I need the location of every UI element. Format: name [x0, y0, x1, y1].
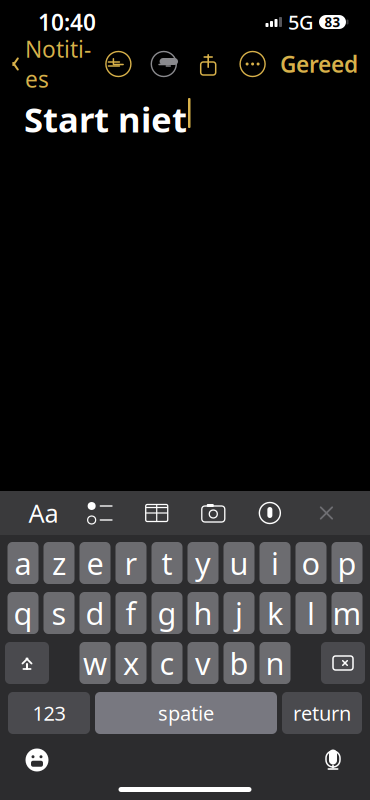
button[interactable]: k [259, 592, 290, 634]
staticText: n [265, 643, 284, 683]
button[interactable]: a [7, 542, 38, 584]
button[interactable]: spatie [95, 692, 277, 734]
staticText: q [13, 593, 32, 633]
staticText: s [51, 593, 66, 633]
button[interactable]: Shift [5, 642, 49, 684]
button[interactable]: m [331, 592, 362, 634]
button[interactable]: o [295, 542, 326, 584]
button[interactable]: Table [140, 498, 174, 528]
button[interactable]: q [7, 592, 38, 634]
staticText: return [293, 700, 351, 726]
staticText: r [124, 543, 137, 583]
staticText: 83 [324, 13, 340, 31]
button[interactable]: c [151, 642, 182, 684]
staticText: c [159, 643, 174, 683]
staticText: Aa [29, 496, 59, 530]
staticText: d [85, 593, 104, 633]
staticText: z [52, 543, 66, 583]
button[interactable]: v [187, 642, 218, 684]
button[interactable]: u [223, 542, 254, 584]
button[interactable]: d [79, 592, 110, 634]
staticText: spatie [158, 700, 214, 726]
staticText: y [195, 543, 211, 583]
staticText: w [83, 643, 107, 683]
button[interactable]: Emoji [0, 745, 52, 775]
staticText: e [86, 543, 103, 583]
button[interactable]: Gereed [280, 43, 370, 85]
button[interactable]: p [331, 542, 362, 584]
button[interactable]: Redo [146, 46, 182, 82]
button[interactable]: Notities [0, 28, 91, 100]
button[interactable]: Text format [27, 498, 61, 528]
staticText: Gereed [280, 49, 358, 79]
staticText: 10:40 [38, 7, 96, 37]
staticText: m [332, 593, 361, 633]
staticText: b [229, 643, 248, 683]
button[interactable]: Undo [100, 46, 136, 82]
staticText: l [307, 593, 315, 633]
button[interactable]: z [43, 542, 74, 584]
staticText: j [235, 593, 243, 633]
button[interactable]: Hide keyboard [309, 498, 343, 528]
button[interactable]: Checklist [83, 498, 117, 528]
button[interactable]: t [151, 542, 182, 584]
staticText: f [125, 593, 136, 633]
button[interactable]: Dictate [320, 745, 370, 775]
staticText: k [267, 593, 283, 633]
staticText: t [161, 543, 172, 583]
button[interactable]: e [79, 542, 110, 584]
button[interactable]: x [115, 642, 146, 684]
button[interactable]: b [223, 642, 254, 684]
button[interactable]: Camera [196, 498, 230, 528]
staticText: v [195, 643, 211, 683]
staticText: o [301, 543, 320, 583]
staticText: p [337, 543, 356, 583]
button[interactable]: j [223, 592, 254, 634]
staticText: i [271, 543, 279, 583]
staticText: 5G [288, 9, 314, 35]
button[interactable]: i [259, 542, 290, 584]
button[interactable]: r [115, 542, 146, 584]
staticText: h [193, 593, 212, 633]
button[interactable]: y [187, 542, 218, 584]
staticText: x [123, 643, 139, 683]
staticText: u [229, 543, 248, 583]
staticText: Notities [25, 34, 91, 94]
staticText: Start niet [24, 96, 187, 142]
button[interactable]: w [79, 642, 110, 684]
button[interactable]: More [235, 46, 271, 82]
staticText: 123 [32, 700, 65, 726]
button[interactable]: 123 [8, 692, 90, 734]
button[interactable]: Markup [253, 498, 287, 528]
button[interactable]: n [259, 642, 290, 684]
button[interactable]: l [295, 592, 326, 634]
button[interactable]: s [43, 592, 74, 634]
button[interactable]: Delete [321, 642, 365, 684]
staticText: g [157, 593, 176, 633]
staticText: a [14, 543, 31, 583]
button[interactable]: return [282, 692, 362, 734]
button[interactable]: h [187, 592, 218, 634]
button[interactable]: Share [191, 46, 225, 82]
button[interactable]: f [115, 592, 146, 634]
button[interactable]: g [151, 592, 182, 634]
